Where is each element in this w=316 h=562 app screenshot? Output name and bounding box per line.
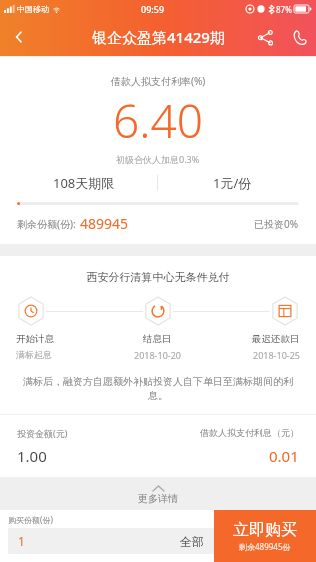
staticText: 初级合伙人加息0.3% (116, 153, 200, 165)
staticText: 借款人拟支付利息（元） (200, 427, 299, 438)
staticText: 87% (276, 4, 292, 15)
button[interactable]: 立即购买 (214, 510, 316, 562)
staticText: 立即购买 (233, 520, 297, 540)
staticText: 剩余份额(份): (17, 217, 76, 231)
staticText: 结息日 (143, 333, 172, 345)
staticText: 2018-10-25 (253, 349, 300, 361)
staticText: 1元/份 (213, 174, 252, 192)
staticText: 西安分行清算中心无条件兑付 (0, 270, 316, 284)
staticText: 0.01 (269, 446, 299, 466)
staticText: 更多详情 (138, 492, 178, 505)
staticText: 中国移动 (17, 4, 49, 14)
staticText: 已投资0% (254, 217, 299, 231)
button[interactable]: Back (0, 18, 38, 56)
staticText: 全部 (180, 534, 204, 549)
staticText: 2018-10-20 (134, 349, 181, 361)
button[interactable]: 1 (8, 528, 214, 554)
staticText: 购买份额(份) (8, 514, 53, 525)
staticText: 108天期限 (53, 174, 115, 192)
staticText: 最迟还款日 (252, 333, 300, 345)
button[interactable]: 更多详情 (0, 480, 316, 510)
staticText: 银企众盈第41429期 (92, 27, 225, 47)
staticText: 剩余489945份 (239, 541, 291, 552)
staticText: 1.00 (17, 446, 47, 466)
staticText: 投资金额(元) (17, 427, 68, 439)
button[interactable]: Share (248, 20, 282, 54)
staticText: 开始计息 (16, 333, 54, 345)
staticText: 6.40 (113, 89, 204, 152)
staticText: 满标起息 (16, 349, 52, 360)
staticText: 满标后，融资方自愿额外补贴投资人自下单日至满标期间的利息。 (22, 375, 294, 402)
staticText: 借款人拟支付利率(%) (111, 74, 206, 88)
staticText: 1 (18, 533, 25, 549)
staticText: 489945 (80, 214, 129, 233)
staticText: 09:59 (141, 3, 165, 15)
button[interactable]: Call (282, 20, 316, 54)
